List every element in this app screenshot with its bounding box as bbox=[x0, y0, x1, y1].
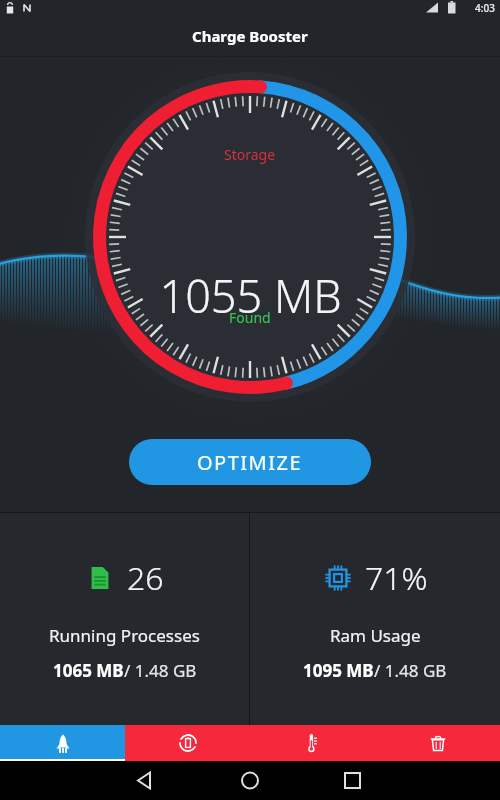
button[interactable]: Boost bbox=[0, 725, 125, 761]
button[interactable]: Cooler bbox=[250, 725, 375, 761]
staticText: 26 bbox=[127, 556, 164, 600]
staticText: 1065 MB bbox=[53, 659, 124, 682]
button[interactable]: CPU bbox=[250, 513, 500, 725]
button[interactable]: OPTIMIZE bbox=[129, 439, 371, 485]
staticText: OPTIMIZE bbox=[197, 449, 303, 476]
staticText: 1055 MB bbox=[159, 265, 342, 326]
staticText: 4:03 bbox=[475, 1, 495, 15]
staticText: Ram Usage bbox=[330, 624, 421, 647]
staticText: / 1.48 GB bbox=[124, 659, 197, 682]
staticText: Charge Booster bbox=[192, 26, 308, 46]
button[interactable]: Battery saver bbox=[125, 725, 250, 761]
staticText: Found bbox=[229, 308, 271, 327]
staticText: Running Processes bbox=[49, 624, 200, 647]
staticText: Storage bbox=[224, 145, 276, 164]
button[interactable]: Processes bbox=[0, 513, 249, 725]
staticText: / 1.48 GB bbox=[374, 659, 447, 682]
button[interactable]: Clean junk bbox=[375, 725, 500, 761]
staticText: 1095 MB bbox=[303, 659, 374, 682]
other: CPU bbox=[323, 563, 353, 593]
other: Processes bbox=[85, 563, 115, 593]
staticText: 71% bbox=[365, 556, 428, 600]
